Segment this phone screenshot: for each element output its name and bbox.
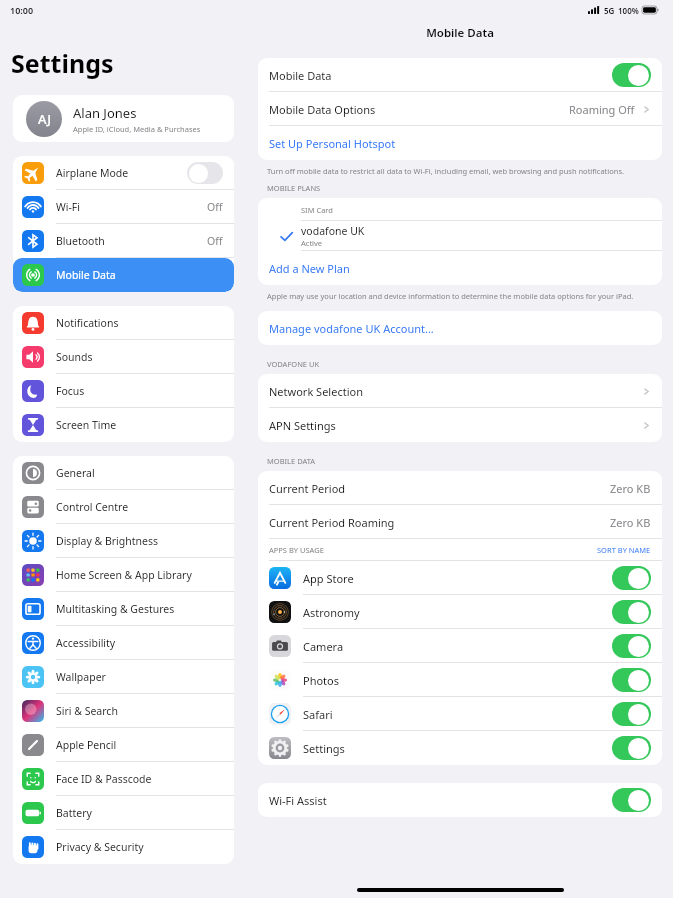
button[interactable]: Home Screen & App Library [13, 558, 234, 592]
staticText: Siri & Search [56, 704, 118, 718]
button[interactable]: Safari [258, 697, 662, 731]
staticText: Photos [303, 673, 340, 688]
staticText: Astronomy [303, 605, 360, 620]
button[interactable]: Settings [258, 731, 662, 765]
staticText: Mobile Data Options [269, 102, 376, 117]
staticText: Accessibility [56, 636, 116, 650]
staticText: Zero KB [610, 515, 651, 530]
staticText: Off [207, 200, 223, 214]
staticText: vodafone UK [301, 224, 365, 238]
button[interactable]: On [612, 63, 651, 87]
button[interactable]: Bluetooth [13, 224, 234, 258]
staticText: Mobile Data [56, 268, 116, 282]
staticText: MOBILE DATA [267, 456, 316, 466]
button[interactable]: Wi-Fi Assist [258, 783, 662, 817]
button[interactable]: Multitasking & Gestures [13, 592, 234, 626]
button[interactable]: Mobile Data [258, 58, 662, 92]
staticText: Alan Jones [73, 104, 137, 122]
staticText: Settings [303, 741, 345, 756]
staticText: Set Up Personal Hotspot [269, 136, 396, 151]
button[interactable]: General [13, 456, 234, 490]
button[interactable]: Add a New Plan [258, 251, 662, 285]
button[interactable]: Current Period [258, 471, 662, 505]
staticText: Apple ID, iCloud, Media & Purchases [73, 124, 201, 134]
button[interactable]: On [612, 668, 651, 692]
staticText: App Store [303, 571, 354, 586]
button[interactable]: Airplane Mode [13, 156, 234, 190]
staticText: Off [207, 234, 223, 248]
staticText: Screen Time [56, 418, 117, 432]
button[interactable]: Face ID & Passcode [13, 762, 234, 796]
staticText: Camera [303, 639, 344, 654]
staticText: Mobile Data [269, 68, 332, 83]
staticText: Multitasking & Gestures [56, 602, 175, 616]
button[interactable]: On [612, 702, 651, 726]
staticText: Manage vodafone UK Account... [269, 321, 434, 336]
staticText: Apple may use your location and device i… [267, 291, 634, 301]
button[interactable]: Sounds [13, 340, 234, 374]
staticText: Mobile Data [426, 25, 494, 41]
button[interactable]: Network Selection [258, 374, 662, 408]
staticText: Current Period Roaming [269, 515, 395, 530]
button[interactable]: Set Up Personal Hotspot [258, 126, 662, 160]
button[interactable]: Camera [258, 629, 662, 663]
staticText: MOBILE PLANS [267, 183, 321, 193]
staticText: 5G [604, 5, 615, 16]
staticText: APN Settings [269, 418, 336, 433]
staticText: SIM Card [301, 205, 333, 215]
button[interactable]: SORT BY NAME [597, 545, 651, 555]
button[interactable]: Display & Brightness [13, 524, 234, 558]
staticText: Wi-Fi Assist [269, 793, 327, 808]
button[interactable]: Manage vodafone UK Account... [258, 311, 662, 345]
staticText: Wi-Fi [56, 200, 81, 214]
button[interactable]: On [612, 600, 651, 624]
staticText: Current Period [269, 481, 346, 496]
staticText: SORT BY NAME [597, 545, 651, 555]
button[interactable]: Wallpaper [13, 660, 234, 694]
staticText: Bluetooth [56, 234, 105, 248]
button[interactable]: Focus [13, 374, 234, 408]
button[interactable]: Battery [13, 796, 234, 830]
button[interactable]: APN Settings [258, 408, 662, 442]
staticText: Active [301, 238, 323, 248]
staticText: Control Centre [56, 500, 129, 514]
button[interactable]: AJ [13, 95, 234, 142]
button[interactable]: Current Period Roaming [258, 505, 662, 539]
button[interactable]: Accessibility [13, 626, 234, 660]
button[interactable]: Notifications [13, 306, 234, 340]
button[interactable]: Screen Time [13, 408, 234, 442]
staticText: Airplane Mode [56, 166, 129, 180]
staticText: 100% [618, 5, 639, 16]
staticText: Display & Brightness [56, 534, 159, 548]
button[interactable]: Wi-Fi [13, 190, 234, 224]
staticText: Wallpaper [56, 670, 106, 684]
staticText: APPS BY USAGE [269, 545, 324, 555]
staticText: Add a New Plan [269, 261, 350, 276]
button[interactable]: On [612, 788, 651, 812]
button[interactable]: vodafone UK [258, 221, 662, 251]
button[interactable]: On [612, 566, 651, 590]
staticText: Zero KB [610, 481, 651, 496]
button[interactable]: On [612, 736, 651, 760]
button[interactable]: Off [187, 162, 223, 184]
button[interactable]: Photos [258, 663, 662, 697]
staticText: Safari [303, 707, 333, 722]
staticText: Focus [56, 384, 85, 398]
staticText: Turn off mobile data to restrict all dat… [267, 166, 625, 176]
staticText: Roaming Off [569, 102, 635, 117]
button[interactable]: Astronomy [258, 595, 662, 629]
button[interactable]: Mobile Data [13, 258, 234, 292]
button[interactable]: Control Centre [13, 490, 234, 524]
button[interactable]: Apple Pencil [13, 728, 234, 762]
staticText: Apple Pencil [56, 738, 117, 752]
button[interactable]: Privacy & Security [13, 830, 234, 864]
staticText: 10:00 [10, 4, 34, 16]
staticText: AJ [38, 110, 51, 128]
button[interactable]: Siri & Search [13, 694, 234, 728]
button[interactable]: On [612, 634, 651, 658]
button[interactable]: App Store [258, 561, 662, 595]
button[interactable]: Mobile Data Options [258, 92, 662, 126]
staticText: Network Selection [269, 384, 363, 399]
staticText: Face ID & Passcode [56, 772, 152, 786]
staticText: Settings [11, 46, 114, 80]
